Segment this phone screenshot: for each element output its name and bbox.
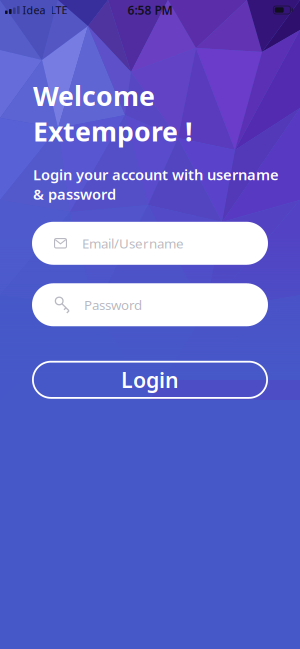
button[interactable]: Password <box>32 283 268 326</box>
button[interactable]: Login <box>32 361 268 399</box>
button[interactable]: Email/Username <box>32 222 268 265</box>
staticText: Login <box>121 366 179 394</box>
staticText: & password <box>33 184 116 204</box>
staticText: Welcome <box>33 78 155 113</box>
staticText: LTE <box>51 3 68 17</box>
staticText: 6:58 PM <box>127 2 172 18</box>
staticText: Password <box>84 296 142 314</box>
staticText: Email/Username <box>82 234 184 252</box>
staticText: Login your account with username <box>33 165 279 184</box>
staticText: Idea <box>23 3 46 17</box>
staticText: Extempore ! <box>33 113 193 149</box>
